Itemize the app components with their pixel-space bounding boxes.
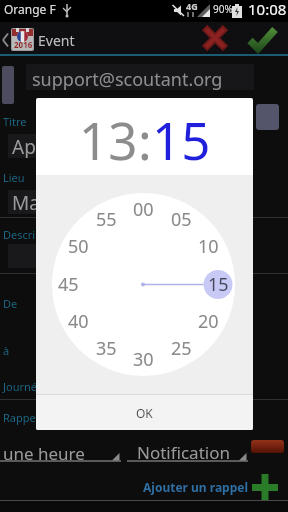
staticText: Ajouter un rappel — [143, 479, 248, 495]
staticText: Description — [3, 227, 63, 242]
button[interactable] — [247, 26, 277, 54]
staticText: Journée entière — [3, 379, 83, 394]
staticText: 00 — [133, 197, 154, 217]
staticText: 05 — [171, 207, 192, 227]
staticText: 15 — [208, 272, 229, 292]
staticText: une heure — [3, 442, 85, 465]
staticText: 4G — [186, 0, 198, 12]
staticText: OK — [136, 405, 153, 421]
staticText: Maison — [12, 190, 78, 214]
staticText: 25 — [171, 336, 192, 356]
staticText: : — [138, 105, 152, 161]
staticText: 40 — [68, 309, 89, 329]
staticText: Event — [38, 31, 75, 50]
staticText: 45 — [58, 272, 79, 292]
staticText: Orange F — [4, 1, 56, 17]
staticText: 15 — [152, 105, 211, 161]
staticText: Rappels — [3, 410, 44, 425]
button[interactable]: Ajouter un rappel — [100, 479, 248, 495]
staticText: 35 — [96, 336, 117, 356]
button[interactable] — [201, 25, 229, 53]
staticText: 10 — [198, 234, 219, 254]
button[interactable] — [251, 440, 284, 453]
staticText: 50 — [68, 234, 89, 254]
staticText: support@scoutant.org — [32, 67, 223, 91]
staticText: Lieu — [3, 170, 25, 185]
staticText: 20 — [198, 309, 219, 329]
staticText: 10:08 — [248, 0, 287, 19]
staticText: Apero — [12, 134, 66, 158]
staticText: 55 — [96, 207, 117, 227]
button[interactable]: OK — [36, 395, 253, 430]
staticText: 2016 — [14, 39, 33, 50]
staticText: De — [3, 296, 18, 311]
staticText: 30 — [133, 347, 154, 367]
staticText: Titre — [3, 114, 27, 129]
staticText: 90% — [213, 2, 233, 16]
staticText: 13 — [79, 105, 138, 161]
staticText: à — [3, 343, 10, 358]
staticText: Notification — [137, 441, 230, 464]
